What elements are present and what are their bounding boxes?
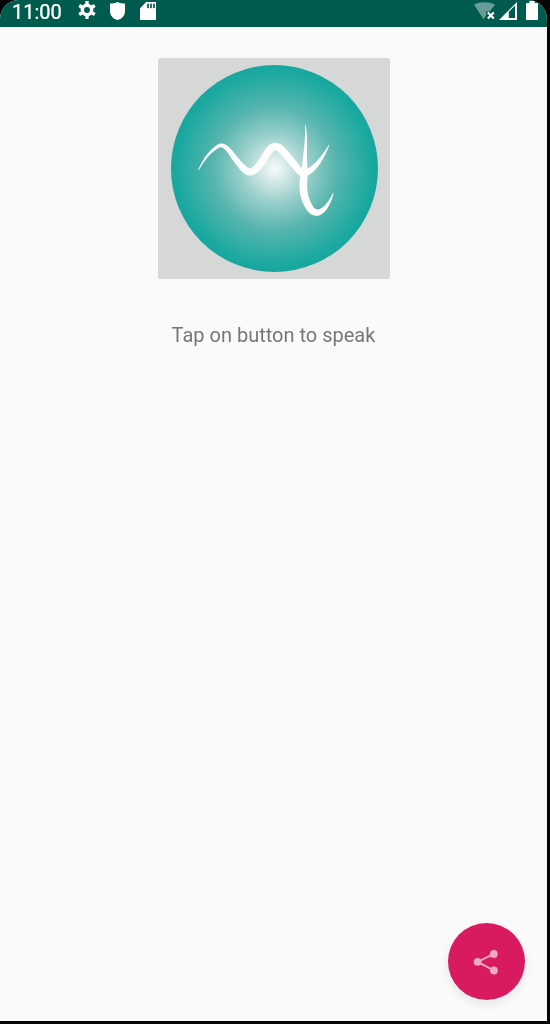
button[interactable]: Share: [448, 923, 525, 1000]
staticText: 11:00: [12, 0, 62, 23]
staticText: Tap on button to speak: [0, 323, 547, 346]
